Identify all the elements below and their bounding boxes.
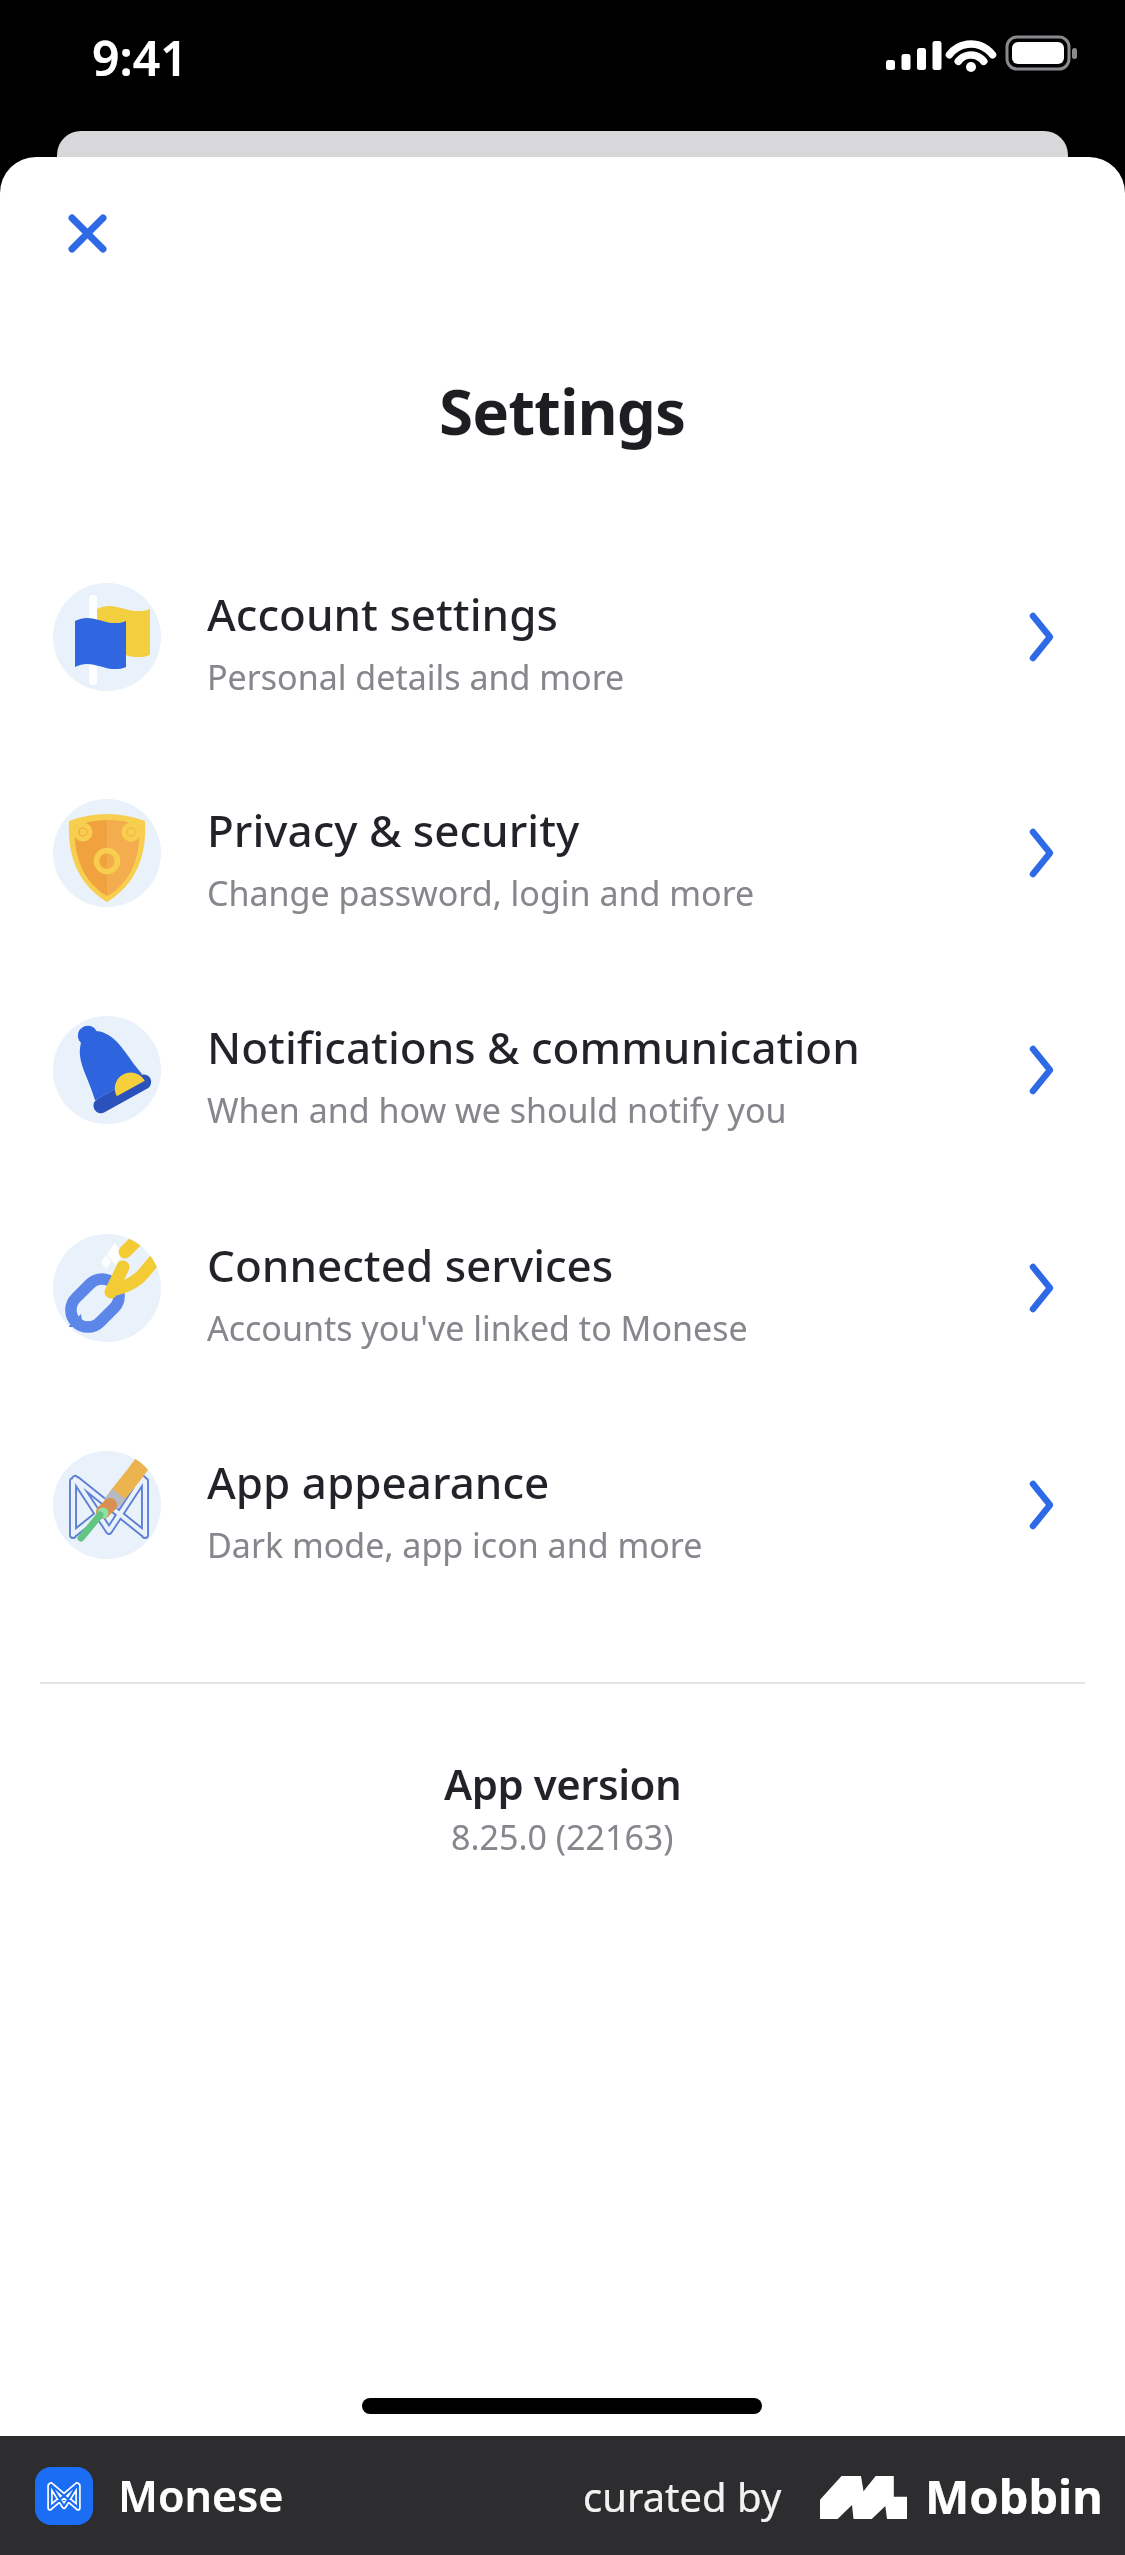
button[interactable]: Notifications & communication (0, 962, 1125, 1178)
staticText: 8.25.0 (22163) (451, 1814, 674, 1860)
button[interactable] (48, 194, 126, 272)
staticText: Accounts you've linked to Monese (207, 1305, 748, 1351)
button[interactable] (35, 2467, 93, 2525)
staticText: App appearance (207, 1452, 550, 1512)
button[interactable]: Account settings (0, 529, 1125, 745)
staticText: Notifications & communication (207, 1017, 860, 1077)
staticText: Monese (118, 2466, 284, 2525)
button[interactable]: App appearance (0, 1397, 1125, 1613)
staticText: Personal details and more (207, 654, 625, 700)
staticText: curated by (583, 2469, 782, 2523)
button[interactable]: Privacy & security (0, 745, 1125, 961)
staticText: Connected services (207, 1235, 614, 1295)
staticText: Settings (439, 369, 686, 453)
button[interactable]: Connected services (0, 1180, 1125, 1396)
staticText: Change password, login and more (207, 870, 755, 916)
staticText: App version (444, 1755, 682, 1809)
staticText: Privacy & security (207, 800, 580, 860)
staticText: When and how we should notify you (207, 1087, 787, 1133)
staticText: Mobbin (925, 2464, 1103, 2528)
staticText: Dark mode, app icon and more (207, 1522, 703, 1568)
staticText: 9:41 (92, 25, 188, 90)
staticText: Account settings (207, 584, 558, 644)
